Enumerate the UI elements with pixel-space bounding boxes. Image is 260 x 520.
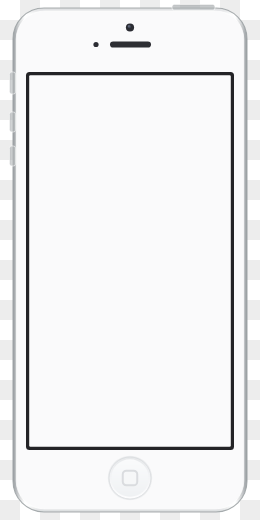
button[interactable]: iPhone device mockup bbox=[0, 0, 260, 520]
